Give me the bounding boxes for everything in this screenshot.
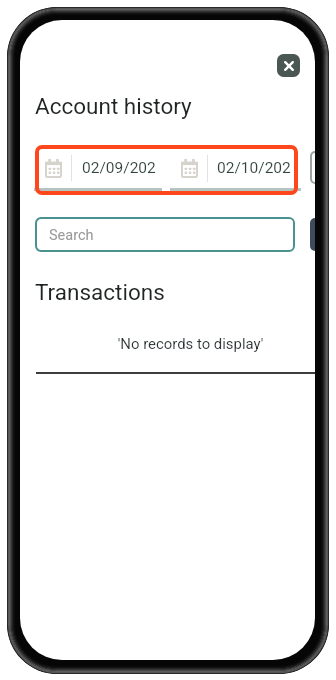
staticText: 'No records to display' [35,335,315,352]
staticText: Account history [35,93,192,119]
staticText: Transactions [35,279,165,305]
staticText: 02/09/202 [82,159,156,177]
button[interactable]: Apply date range [310,151,315,184]
staticText: 02/10/202 [217,159,291,177]
button[interactable]: 02/09/202 [35,145,298,195]
button[interactable]: Search [310,218,315,251]
staticText: Search [49,227,94,244]
button[interactable]: Search [35,217,295,252]
button[interactable]: Close [277,54,300,77]
